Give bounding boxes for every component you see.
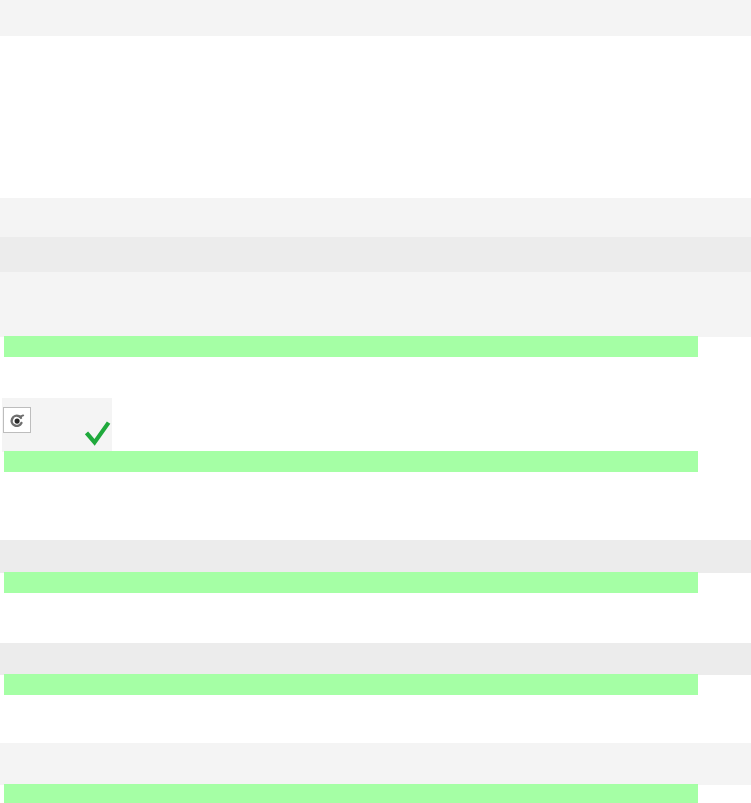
button[interactable] [2, 398, 112, 452]
button[interactable]: Verified [87, 423, 108, 445]
button[interactable]: Image [3, 407, 31, 433]
